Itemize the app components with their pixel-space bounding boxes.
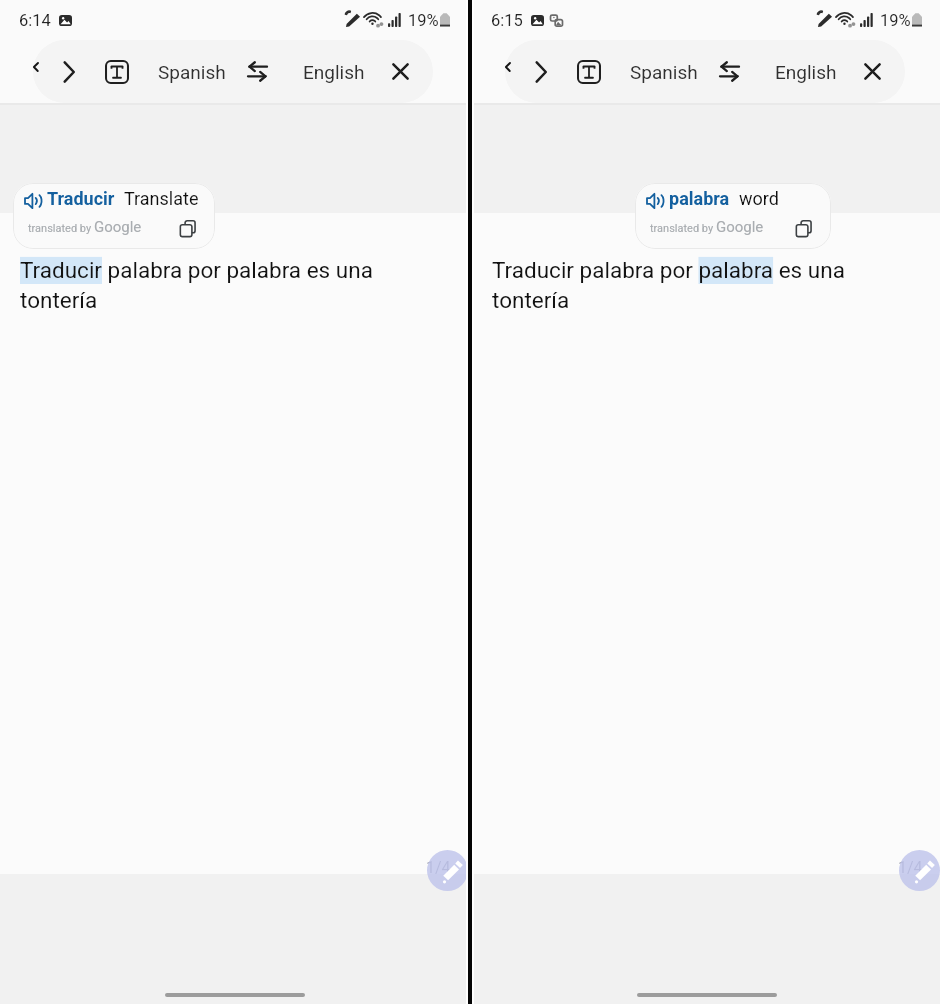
staticText: word [739, 188, 779, 209]
button[interactable]: English [299, 53, 369, 90]
button[interactable]: Close [854, 53, 891, 90]
button[interactable]: Back [33, 63, 38, 71]
button[interactable]: Spanish [629, 53, 699, 90]
button[interactable]: Traducir [13, 183, 215, 249]
staticText: 6:14 [19, 11, 51, 30]
button[interactable]: Copy [175, 215, 201, 241]
staticText: translated by Google [650, 218, 764, 236]
button[interactable]: Close [382, 53, 419, 90]
staticText: palabra [669, 188, 730, 209]
button[interactable]: Edit translation [899, 850, 940, 891]
staticText: English [303, 61, 365, 83]
staticText: 6:15 [491, 11, 523, 30]
button[interactable]: Back [505, 63, 510, 71]
button[interactable]: Forward [33, 40, 433, 103]
staticText: Traducir palabra por palabra es una tont… [492, 257, 892, 313]
staticText: Spanish [158, 61, 226, 83]
staticText: 1/4 [426, 858, 451, 877]
staticText: Translate [124, 188, 199, 209]
button[interactable]: Traducir palabra por palabra es una tont… [20, 257, 420, 313]
staticText: English [775, 61, 837, 83]
button[interactable]: Forward [50, 53, 87, 90]
staticText: Traducir [47, 188, 115, 209]
button[interactable]: palabra [635, 183, 831, 249]
button[interactable]: Swap languages [711, 53, 748, 90]
button[interactable]: Traducir palabra por palabra es una tont… [492, 257, 892, 313]
button[interactable]: Forward [505, 40, 905, 103]
button[interactable]: Spanish [157, 53, 227, 90]
button[interactable]: Text translation mode [98, 53, 135, 90]
staticText: Spanish [630, 61, 698, 83]
button[interactable]: Edit translation [427, 850, 468, 891]
button[interactable]: Swap languages [239, 53, 276, 90]
button[interactable]: Text translation mode [570, 53, 607, 90]
staticText: Traducir palabra por palabra es una tont… [20, 257, 420, 313]
staticText: 19% [408, 11, 439, 30]
staticText: 1/4 [898, 858, 923, 877]
button[interactable]: Forward [522, 53, 559, 90]
staticText: translated by Google [28, 218, 142, 236]
button[interactable]: English [771, 53, 841, 90]
staticText: 19% [880, 11, 911, 30]
button[interactable]: Copy [791, 215, 817, 241]
